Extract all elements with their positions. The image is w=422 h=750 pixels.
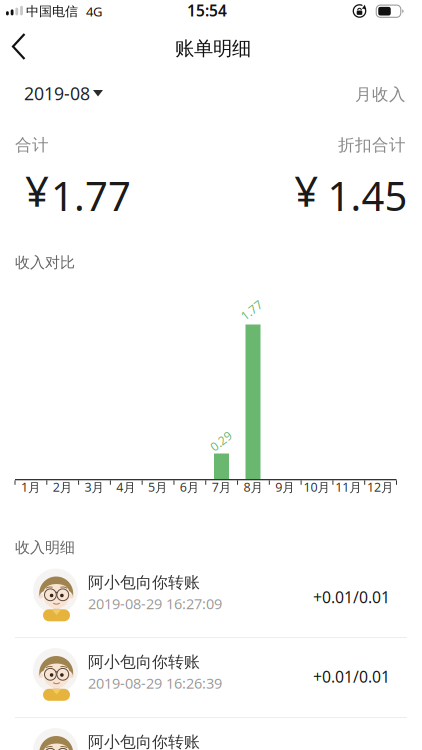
button[interactable]: 2019-08 (0, 81, 200, 105)
button[interactable]: 阿小包向你转账 (0, 551, 422, 631)
staticText: 合计 (15, 135, 49, 155)
staticText: 7月 (212, 478, 232, 495)
staticText: ¥ (25, 162, 49, 219)
button[interactable]: 阿小包向你转账 (0, 631, 422, 710)
staticText: 2月 (53, 478, 73, 495)
staticText: 1.77 (239, 302, 263, 318)
staticText: 12月 (367, 478, 394, 495)
staticText: 阿小包向你转账 (88, 572, 200, 592)
staticText: 9月 (275, 478, 295, 495)
staticText: 阿小包向你转账 (88, 652, 200, 672)
staticText: 收入明细 (15, 538, 75, 557)
staticText: 2019-08-29 16:26:39 (88, 673, 222, 693)
staticText: +0.01/0.01 (313, 586, 390, 608)
staticText: 中国电信 (26, 3, 78, 20)
button[interactable]: Back (0, 27, 40, 66)
staticText: 3月 (84, 478, 104, 495)
staticText: 收入对比 (15, 253, 75, 272)
staticText: 4月 (116, 478, 136, 495)
staticText: 1.45 (327, 168, 407, 223)
staticText: ¥ (294, 162, 318, 219)
staticText: 15:54 (187, 0, 227, 21)
staticText: 4G (86, 3, 102, 20)
staticText: 6月 (180, 478, 200, 495)
staticText: 2019-08 (24, 81, 90, 105)
staticText: 8月 (243, 478, 263, 495)
staticText: 账单明细 (175, 36, 251, 61)
button[interactable]: 月收入 (286, 84, 406, 105)
staticText: 1.77 (51, 168, 131, 223)
staticText: 11月 (335, 478, 362, 495)
staticText: 2019-08-29 16:27:09 (88, 594, 222, 613)
staticText: +0.01/0.01 (313, 666, 390, 687)
staticText: 5月 (148, 478, 168, 495)
staticText: 阿小包向你转账 (88, 732, 200, 750)
staticText: 折扣合计 (338, 135, 406, 155)
staticText: 0.29 (209, 433, 233, 449)
staticText: 10月 (303, 478, 330, 495)
staticText: 1月 (21, 478, 41, 495)
button[interactable]: 阿小包向你转账 (0, 711, 422, 750)
staticText: 月收入 (355, 84, 406, 105)
